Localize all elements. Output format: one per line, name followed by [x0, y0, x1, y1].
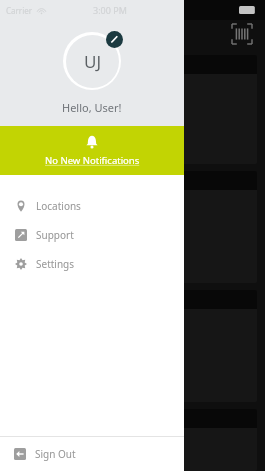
staticText: Hello, User! — [62, 100, 122, 115]
staticText: Sign Out — [35, 447, 76, 461]
staticText: 3:00 PM — [93, 4, 127, 16]
staticText: UJ — [84, 50, 102, 73]
button[interactable]: Locations — [0, 191, 184, 220]
button[interactable]: No New Notifications — [0, 126, 184, 175]
staticText: Locations — [36, 199, 81, 213]
button[interactable]: TRAINING GUIDANCE — [8, 290, 257, 402]
button[interactable]: Sign Out — [0, 437, 184, 471]
staticText: Settings — [36, 257, 75, 271]
button[interactable]: UJ — [63, 32, 121, 90]
button[interactable]: Edit profile — [106, 31, 123, 48]
staticText: Support — [36, 228, 74, 242]
staticText: No New Notifications — [45, 154, 140, 167]
staticText: Carrier — [6, 5, 33, 16]
button[interactable]: Settings — [0, 249, 184, 278]
button[interactable]: Support — [0, 220, 184, 249]
staticText: SEE FRIENDS — [18, 59, 72, 71]
button[interactable]: DEALS — [8, 409, 257, 471]
button[interactable] — [8, 171, 257, 283]
button[interactable]: SEE FRIENDS — [8, 55, 257, 164]
button[interactable]: Barcode — [231, 23, 253, 45]
